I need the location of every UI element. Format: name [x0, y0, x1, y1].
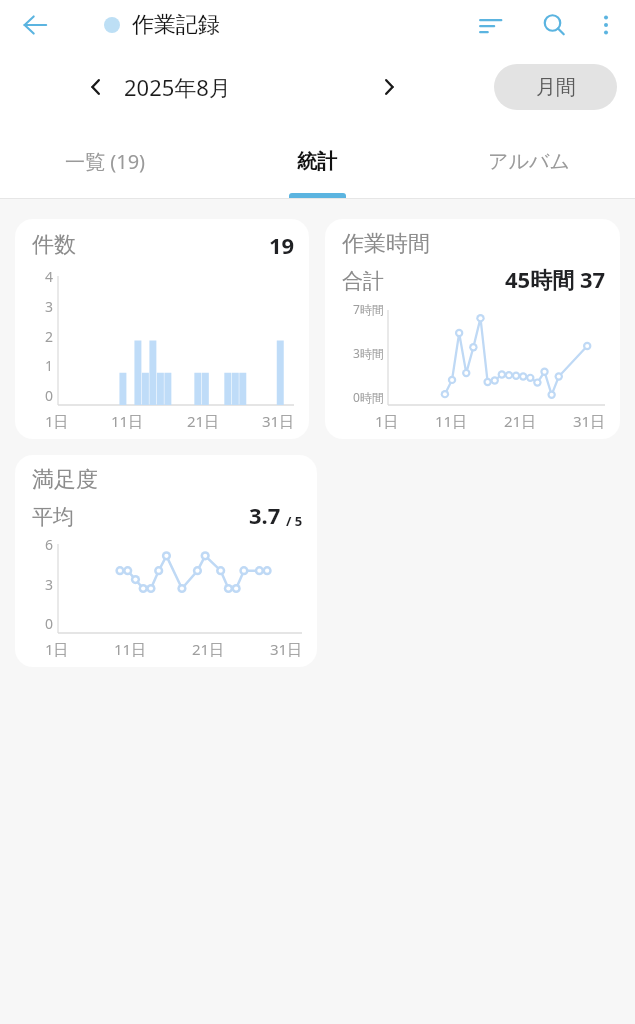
staticText: 31日 — [262, 411, 295, 431]
staticText: 合計 — [342, 268, 384, 294]
button[interactable]: 作業時間 — [325, 219, 620, 439]
button[interactable]: Previous month — [73, 64, 119, 110]
staticText: 3 — [45, 297, 54, 316]
staticText: 0 — [45, 386, 54, 405]
staticText: 月間 — [536, 75, 576, 100]
staticText: 1日 — [45, 411, 69, 431]
button[interactable]: 月間 — [494, 64, 617, 110]
staticText: 11日 — [114, 639, 147, 659]
staticText: 19 — [269, 230, 295, 260]
staticText: 作業記録 — [132, 11, 220, 39]
staticText: 6 — [45, 535, 54, 554]
button[interactable]: Next month — [366, 64, 412, 110]
staticText: 11日 — [435, 411, 468, 431]
staticText: 21日 — [192, 639, 225, 659]
button[interactable]: 一覧 (19) — [0, 124, 211, 198]
button[interactable]: Back — [12, 2, 58, 48]
staticText: 一覧 (19) — [65, 148, 146, 175]
staticText: 平均 — [32, 504, 74, 530]
button[interactable]: アルバム — [423, 124, 635, 198]
staticText: 31日 — [270, 639, 303, 659]
staticText: 0時間 — [353, 389, 384, 405]
staticText: 1 — [45, 356, 54, 375]
button[interactable]: 満足度 — [15, 455, 317, 667]
staticText: 2 — [45, 327, 54, 346]
staticText: 7時間 — [353, 301, 384, 317]
staticText: 統計 — [297, 149, 337, 174]
staticText: アルバム — [488, 149, 570, 174]
staticText: 21日 — [187, 411, 220, 431]
staticText: 4 — [45, 267, 54, 286]
button[interactable]: Search — [531, 2, 577, 48]
button[interactable]: 件数 — [15, 219, 309, 439]
staticText: 件数 — [32, 231, 76, 259]
button[interactable]: 統計 — [211, 124, 423, 198]
staticText: 21日 — [504, 411, 537, 431]
button[interactable]: Sort — [467, 2, 513, 48]
staticText: 1日 — [45, 639, 69, 659]
staticText: 31日 — [573, 411, 606, 431]
staticText: / 5 — [286, 512, 303, 530]
staticText: 3時間 — [353, 345, 384, 361]
button[interactable]: More options — [583, 2, 629, 48]
staticText: 45時間 37 — [505, 264, 606, 294]
staticText: 11日 — [111, 411, 144, 431]
staticText: 3.7 — [249, 500, 281, 530]
staticText: 1日 — [375, 411, 399, 431]
staticText: 作業時間 — [342, 230, 430, 258]
staticText: 3 — [45, 575, 54, 594]
button[interactable]: 2025年8月 — [124, 72, 231, 102]
staticText: 0 — [45, 614, 54, 633]
staticText: 満足度 — [32, 466, 98, 494]
